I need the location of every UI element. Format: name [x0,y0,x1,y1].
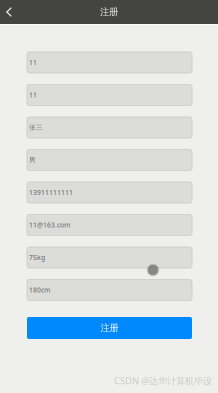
button[interactable]: Back [0,0,22,24]
staticText: 注册 [100,322,118,334]
staticText: 75kg [29,253,45,262]
staticText: 11@163.com [29,220,70,230]
staticText: 11 [29,58,37,67]
staticText: 注册 [100,6,118,18]
staticText: 张三 [29,123,43,132]
staticText: 180cm [29,285,50,295]
staticText: 11 [29,90,37,100]
staticText: CSDN @达华计算机毕设 [114,374,212,387]
button[interactable]: 注册 [27,317,192,339]
staticText: 13911111111 [29,188,73,197]
staticText: 男 [29,156,36,164]
